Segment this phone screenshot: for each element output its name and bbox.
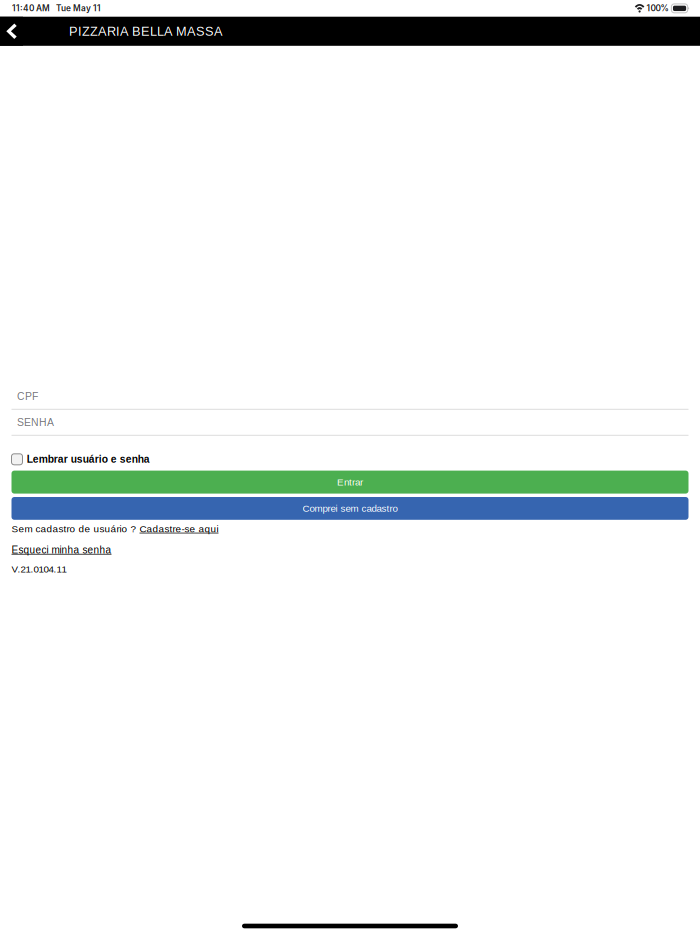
staticText: CPF	[17, 391, 38, 402]
button[interactable]: Esqueci minha senha	[11, 544, 111, 556]
staticText: Sem cadastro de usuário ?	[11, 523, 139, 534]
button[interactable]: SENHA	[11, 410, 688, 436]
staticText: V.21.0104.11	[11, 564, 66, 574]
button[interactable]: Lembrar usuário e senha	[11, 454, 150, 465]
staticText: Tue May 11	[56, 3, 101, 13]
staticText: 11:40 AM	[12, 3, 50, 13]
staticText: Lembrar usuário e senha	[27, 453, 150, 465]
staticText: Esqueci minha senha	[11, 544, 111, 556]
button[interactable]: Entrar	[11, 471, 688, 494]
staticText: Comprei sem cadastro	[302, 503, 397, 514]
staticText: SENHA	[17, 417, 54, 428]
staticText: PIZZARIA BELLA MASSA	[69, 24, 223, 38]
staticText: 100%	[646, 3, 668, 13]
button[interactable]: CPF	[11, 384, 688, 410]
button[interactable]: Comprei sem cadastro	[11, 497, 688, 520]
button[interactable]: Back	[0, 17, 23, 46]
button[interactable]: Cadastre-se aqui	[139, 523, 218, 534]
staticText: Entrar	[337, 477, 363, 487]
staticText: Cadastre-se aqui	[139, 523, 218, 534]
